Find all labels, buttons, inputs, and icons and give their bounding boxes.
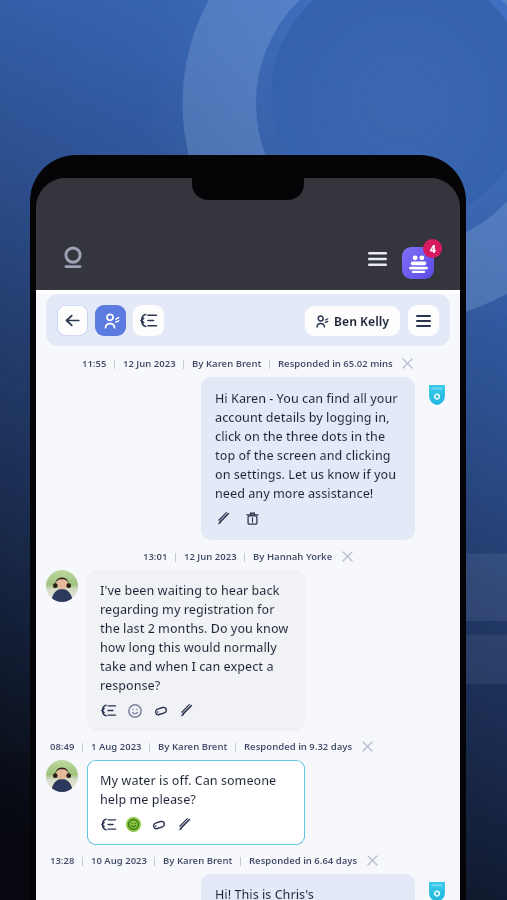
- button[interactable]: Options: [408, 305, 439, 336]
- staticText: 13:01: [143, 550, 168, 563]
- button[interactable]: Dismiss: [365, 853, 379, 867]
- button[interactable]: Hi! This is Chris's Signaturessssss: [201, 874, 415, 900]
- button[interactable]: Sentiment: [126, 702, 143, 719]
- button[interactable]: Edit: [178, 702, 195, 719]
- button[interactable]: I've been waiting to hear back regarding…: [87, 570, 305, 731]
- button[interactable]: Avatar: [46, 760, 78, 792]
- staticText: |: [107, 357, 123, 370]
- staticText: 13:28: [50, 854, 75, 867]
- button[interactable]: Verified: [424, 878, 450, 900]
- button[interactable]: Contact: [95, 305, 126, 336]
- staticText: |: [147, 854, 163, 867]
- staticText: 4: [430, 242, 436, 256]
- button[interactable]: Dismiss: [400, 356, 414, 370]
- button[interactable]: Reply: [100, 816, 117, 833]
- staticText: |: [262, 357, 278, 370]
- staticText: By Karen Brent: [158, 740, 228, 753]
- staticText: By Karen Brent: [163, 854, 233, 867]
- staticText: My water is off. Can someone help me ple…: [100, 772, 292, 808]
- staticText: 11:55: [82, 357, 107, 370]
- staticText: Hi! This is Chris's Signaturessssss: [215, 886, 401, 900]
- staticText: I've been waiting to hear back regarding…: [100, 582, 292, 694]
- button[interactable]: Tag: [150, 816, 167, 833]
- staticText: |: [168, 550, 184, 563]
- button[interactable]: Dismiss: [360, 739, 374, 753]
- staticText: By Karen Brent: [192, 357, 262, 370]
- staticText: |: [142, 740, 158, 753]
- staticText: Responded in 65.02 mins: [278, 357, 393, 370]
- button[interactable]: Dismiss: [340, 549, 354, 563]
- staticText: |: [233, 854, 249, 867]
- button[interactable]: Edit: [176, 816, 193, 833]
- staticText: |: [75, 854, 91, 867]
- staticText: |: [228, 740, 244, 753]
- button[interactable]: Teams: [402, 247, 434, 279]
- button[interactable]: Reply: [100, 702, 117, 719]
- staticText: 10 Aug 2023: [91, 854, 147, 867]
- button[interactable]: Avatar: [46, 570, 78, 602]
- staticText: By Hannah Yorke: [253, 550, 333, 563]
- staticText: 12 Jun 2023: [123, 357, 176, 370]
- staticText: 08:49: [50, 740, 75, 753]
- staticText: 1 Aug 2023: [91, 740, 142, 753]
- button[interactable]: My water is off. Can someone help me ple…: [87, 760, 305, 845]
- button[interactable]: Verified: [424, 381, 450, 407]
- button[interactable]: Menu: [362, 244, 392, 274]
- button[interactable]: Edit: [215, 510, 232, 527]
- staticText: |: [176, 357, 192, 370]
- staticText: 12 Jun 2023: [184, 550, 237, 563]
- staticText: Responded in 9.32 days: [244, 740, 353, 753]
- button[interactable]: Ben Kelly: [305, 306, 400, 336]
- staticText: Ben Kelly: [334, 313, 390, 329]
- button[interactable]: Hi Karen - You can find all your account…: [201, 377, 415, 540]
- staticText: |: [75, 740, 91, 753]
- button[interactable]: Home: [56, 242, 90, 276]
- button[interactable]: Sentiment: [126, 817, 141, 832]
- staticText: Responded in 6.64 days: [249, 854, 358, 867]
- staticText: |: [237, 550, 253, 563]
- button[interactable]: Tag: [152, 702, 169, 719]
- button[interactable]: Back: [57, 305, 88, 336]
- button[interactable]: Reply all: [133, 305, 164, 336]
- staticText: Hi Karen - You can find all your account…: [215, 390, 401, 502]
- button[interactable]: Delete: [244, 510, 261, 527]
